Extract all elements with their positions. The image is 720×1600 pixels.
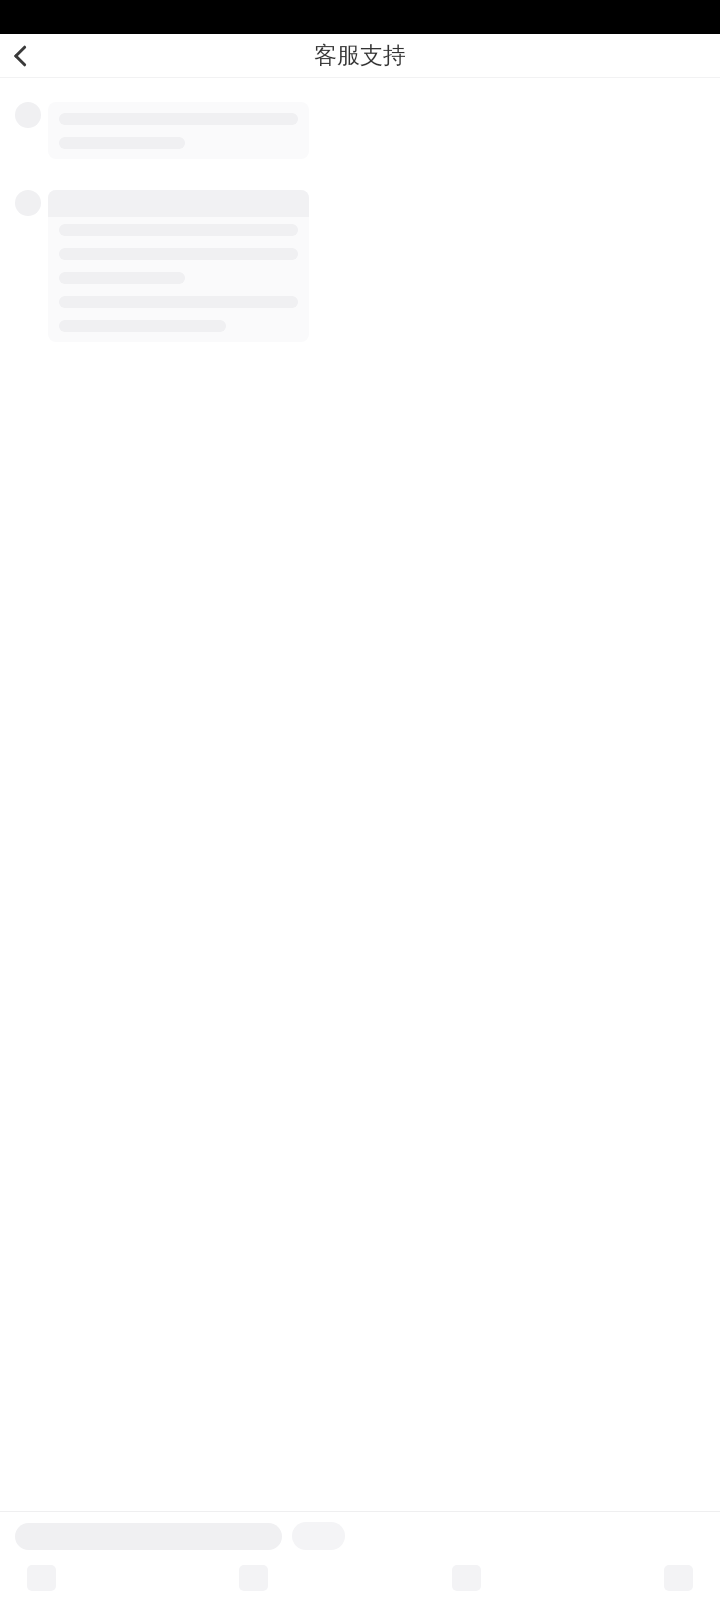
button[interactable]: Back xyxy=(0,34,44,77)
button[interactable] xyxy=(48,102,309,159)
staticText: 客服支持 xyxy=(314,41,406,70)
button[interactable] xyxy=(48,190,309,342)
button[interactable]: Send xyxy=(292,1522,345,1550)
